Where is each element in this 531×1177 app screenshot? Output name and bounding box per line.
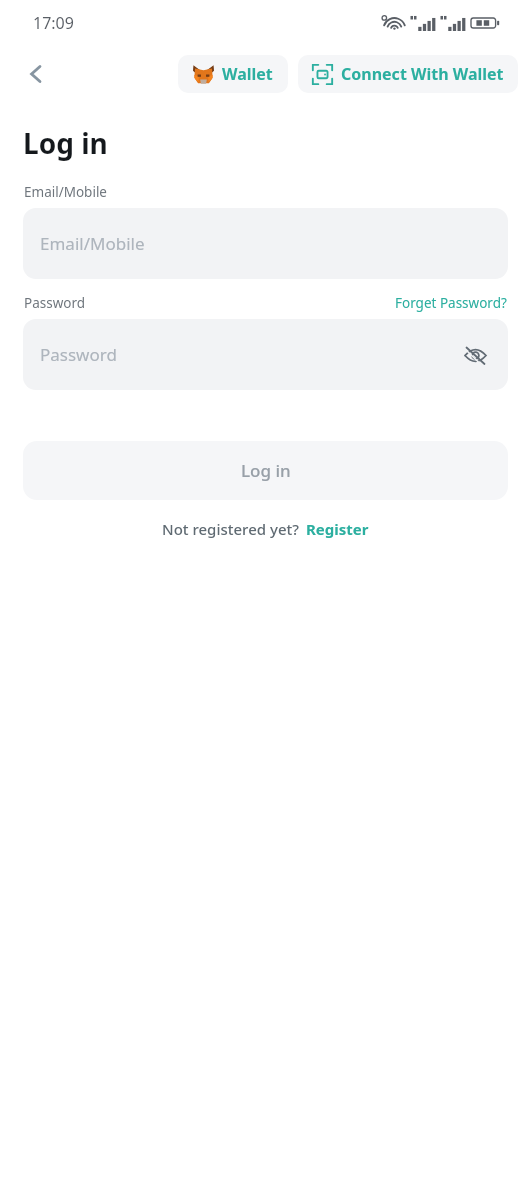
staticText: Not registered yet?	[162, 519, 299, 539]
staticText: Forget Password?	[395, 294, 507, 312]
button[interactable]: Connect With Wallet	[298, 55, 518, 93]
button[interactable]: Wallet	[178, 55, 288, 93]
button[interactable]: Forget Password?	[395, 294, 507, 312]
button[interactable]: Email/Mobile	[23, 208, 508, 279]
staticText: Log in	[241, 459, 291, 482]
staticText: Connect With Wallet	[341, 63, 504, 85]
staticText: Register	[306, 519, 369, 539]
button[interactable]: Log in	[23, 441, 508, 500]
button[interactable]: Back	[14, 52, 58, 96]
button[interactable]: Password	[23, 319, 508, 390]
staticText: Log in	[23, 124, 108, 162]
staticText: 17:09	[33, 12, 74, 34]
staticText: Email/Mobile	[24, 183, 107, 201]
button[interactable]: Show password	[459, 339, 491, 371]
staticText: Wallet	[222, 63, 273, 85]
staticText: Password	[24, 294, 86, 312]
staticText: Email/Mobile	[40, 232, 145, 255]
button[interactable]: Register	[306, 519, 369, 539]
staticText: Password	[40, 343, 117, 366]
